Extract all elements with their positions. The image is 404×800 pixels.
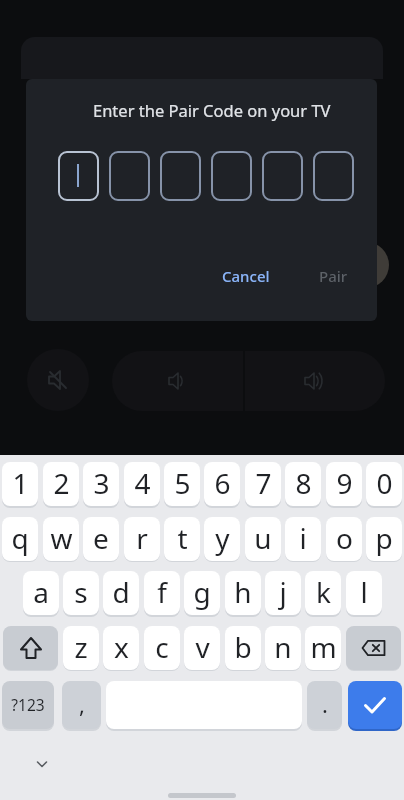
staticText: r	[136, 519, 148, 557]
staticText: 1	[12, 464, 29, 502]
button[interactable]	[348, 681, 402, 729]
staticText: j	[279, 573, 287, 611]
staticText: a	[33, 573, 49, 611]
staticText: 6	[214, 464, 231, 502]
button[interactable]: Pair	[310, 263, 356, 289]
button[interactable]: e	[83, 517, 119, 561]
staticText: n	[274, 628, 292, 666]
button[interactable]: s	[63, 571, 99, 615]
staticText: d	[112, 573, 130, 611]
button[interactable]: d	[103, 571, 139, 615]
button[interactable]: 3	[83, 462, 119, 506]
staticText: v	[195, 628, 210, 666]
button[interactable]: 8	[285, 462, 321, 506]
staticText: e	[93, 519, 109, 557]
button[interactable]: 6	[204, 462, 240, 506]
button[interactable]	[3, 626, 58, 670]
staticText: 2	[53, 464, 70, 502]
staticText: Enter the Pair Code on your TV	[93, 99, 331, 121]
button[interactable]	[30, 752, 54, 776]
staticText: z	[74, 628, 88, 666]
button[interactable]: h	[225, 571, 261, 615]
staticText: b	[234, 628, 252, 666]
staticText: w	[50, 519, 73, 557]
staticText: i	[299, 519, 307, 557]
staticText: x	[114, 628, 129, 666]
button[interactable]: 0	[366, 462, 402, 506]
staticText: .	[322, 689, 328, 719]
staticText: m	[310, 628, 337, 666]
staticText: Cancel	[222, 266, 270, 286]
button[interactable]: j	[265, 571, 301, 615]
staticText: Pair	[319, 266, 348, 286]
staticText: c	[155, 628, 169, 666]
staticText: t	[177, 519, 188, 557]
button[interactable]: f	[144, 571, 180, 615]
staticText: g	[193, 573, 211, 611]
staticText: u	[254, 519, 272, 557]
staticText: ?123	[11, 694, 45, 715]
button[interactable]: t	[164, 517, 200, 561]
button[interactable]: 7	[245, 462, 281, 506]
button[interactable]: v	[184, 626, 220, 670]
button[interactable]: b	[225, 626, 261, 670]
button[interactable]: m	[305, 626, 341, 670]
staticText: y	[215, 519, 230, 557]
button[interactable]: .	[307, 681, 342, 729]
button[interactable]: z	[63, 626, 99, 670]
button[interactable]: k	[305, 571, 341, 615]
button[interactable]: Cancel	[218, 263, 274, 289]
button[interactable]: q	[2, 517, 38, 561]
staticText: q	[11, 519, 29, 557]
staticText: 0	[376, 464, 393, 502]
button[interactable]	[245, 351, 385, 411]
staticText: 4	[134, 464, 151, 502]
button[interactable]: w	[43, 517, 79, 561]
staticText: f	[157, 573, 167, 611]
button[interactable]: l	[346, 571, 382, 615]
button[interactable]: 2	[43, 462, 79, 506]
button[interactable]: ?123	[2, 681, 54, 729]
button[interactable]: c	[144, 626, 180, 670]
button[interactable]: y	[204, 517, 240, 561]
button[interactable]: p	[366, 517, 402, 561]
button[interactable]	[27, 349, 89, 411]
staticText: 7	[255, 464, 272, 502]
staticText: s	[74, 573, 88, 611]
staticText: p	[375, 519, 393, 557]
staticText: k	[316, 573, 331, 611]
button[interactable]	[346, 626, 401, 670]
staticText: 8	[295, 464, 312, 502]
staticText: 9	[336, 464, 353, 502]
button[interactable]: u	[245, 517, 281, 561]
button[interactable]: n	[265, 626, 301, 670]
staticText: o	[336, 519, 353, 557]
button[interactable]: x	[103, 626, 139, 670]
button[interactable]: o	[326, 517, 362, 561]
staticText: l	[360, 573, 368, 611]
button[interactable]: 1	[2, 462, 38, 506]
button[interactable]: i	[285, 517, 321, 561]
button[interactable]: a	[23, 571, 59, 615]
button[interactable]: g	[184, 571, 220, 615]
button[interactable]: r	[124, 517, 160, 561]
staticText: h	[234, 573, 252, 611]
button[interactable]: ,	[62, 681, 101, 729]
staticText: 5	[174, 464, 191, 502]
button[interactable]: 4	[124, 462, 160, 506]
button[interactable]: 5	[164, 462, 200, 506]
staticText: 3	[93, 464, 110, 502]
staticText: ,	[79, 689, 85, 719]
button[interactable]: 9	[326, 462, 362, 506]
